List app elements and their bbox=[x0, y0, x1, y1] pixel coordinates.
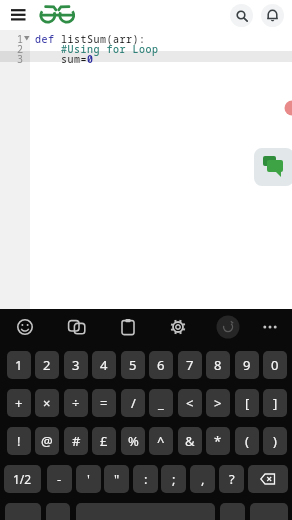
button[interactable]: * bbox=[206, 427, 230, 455]
button[interactable]: 3 bbox=[64, 351, 88, 379]
staticText: 0 bbox=[271, 356, 279, 374]
button[interactable]: 8 bbox=[206, 351, 230, 379]
button[interactable]: ' bbox=[76, 465, 101, 493]
button[interactable]: 9 bbox=[235, 351, 259, 379]
staticText: #Using for Loop bbox=[35, 42, 159, 56]
button[interactable]: # bbox=[64, 427, 88, 455]
button[interactable] bbox=[8, 310, 42, 344]
button[interactable]: @ bbox=[35, 427, 59, 455]
button[interactable]: 0 bbox=[263, 351, 287, 379]
staticText: def listSum(arr): bbox=[35, 32, 146, 46]
staticText: × bbox=[43, 394, 51, 412]
staticText: [ bbox=[245, 394, 250, 412]
button[interactable]: ) bbox=[263, 427, 287, 455]
button[interactable]: 1/2 bbox=[4, 465, 41, 493]
staticText: @ bbox=[41, 432, 53, 450]
staticText: , bbox=[201, 470, 205, 488]
button[interactable]: ] bbox=[263, 389, 287, 417]
staticText: 2 bbox=[43, 356, 51, 374]
button[interactable] bbox=[60, 310, 94, 344]
button[interactable] bbox=[253, 310, 287, 344]
button[interactable] bbox=[230, 4, 253, 27]
button[interactable]: > bbox=[206, 389, 230, 417]
staticText: < bbox=[186, 394, 194, 412]
staticText: 8 bbox=[214, 356, 222, 374]
button[interactable]: / bbox=[121, 389, 145, 417]
button[interactable]: ; bbox=[161, 465, 186, 493]
staticText: ? bbox=[229, 470, 235, 488]
staticText: £ bbox=[100, 432, 108, 450]
button[interactable]: ÷ bbox=[64, 389, 88, 417]
button[interactable]: = bbox=[92, 389, 116, 417]
button[interactable]: " bbox=[104, 465, 129, 493]
button[interactable]: , bbox=[190, 465, 215, 493]
button[interactable] bbox=[111, 310, 145, 344]
staticText: ! bbox=[17, 432, 21, 450]
staticText: / bbox=[131, 394, 136, 412]
staticText: " bbox=[114, 470, 120, 488]
staticText: * bbox=[214, 432, 222, 450]
button[interactable]: ? bbox=[219, 465, 244, 493]
button[interactable]: + bbox=[7, 389, 31, 417]
staticText: ) bbox=[273, 432, 277, 450]
button[interactable]: £ bbox=[92, 427, 116, 455]
staticText: 1/2 bbox=[13, 471, 32, 487]
staticText: 2 bbox=[8, 42, 23, 54]
button[interactable] bbox=[46, 503, 70, 520]
button[interactable]: [ bbox=[235, 389, 259, 417]
button[interactable]: 5 bbox=[121, 351, 145, 379]
button[interactable]: _ bbox=[149, 389, 173, 417]
staticText: 7 bbox=[186, 356, 194, 374]
button[interactable]: 6 bbox=[149, 351, 173, 379]
button[interactable]: : bbox=[133, 465, 158, 493]
button[interactable] bbox=[250, 503, 288, 520]
button[interactable] bbox=[6, 4, 30, 26]
button[interactable]: 1 bbox=[7, 351, 31, 379]
button[interactable]: ^ bbox=[149, 427, 173, 455]
button[interactable] bbox=[5, 503, 41, 520]
button[interactable]: × bbox=[35, 389, 59, 417]
staticText: 5 bbox=[129, 356, 137, 374]
staticText: = bbox=[100, 394, 108, 412]
button[interactable]: 7 bbox=[178, 351, 202, 379]
button[interactable]: ( bbox=[235, 427, 259, 455]
staticText: ' bbox=[87, 470, 90, 488]
button[interactable]: 2 bbox=[35, 351, 59, 379]
staticText: - bbox=[57, 470, 62, 488]
staticText: ; bbox=[172, 470, 176, 488]
button[interactable]: 4 bbox=[92, 351, 116, 379]
staticText: _ bbox=[158, 394, 164, 412]
staticText: 1 bbox=[8, 32, 23, 44]
button[interactable]: % bbox=[121, 427, 145, 455]
staticText: ^ bbox=[157, 432, 165, 450]
staticText: % bbox=[128, 432, 139, 450]
staticText: ÷ bbox=[72, 394, 80, 412]
button[interactable]: & bbox=[178, 427, 202, 455]
button[interactable]: < bbox=[178, 389, 202, 417]
staticText: ( bbox=[245, 432, 249, 450]
staticText: # bbox=[72, 432, 81, 450]
staticText: + bbox=[15, 394, 23, 412]
staticText: > bbox=[214, 394, 222, 412]
staticText: sum=0 bbox=[35, 52, 94, 66]
button[interactable] bbox=[161, 310, 195, 344]
staticText: 3 bbox=[8, 52, 23, 64]
button[interactable] bbox=[261, 4, 284, 27]
button[interactable] bbox=[211, 310, 245, 344]
button[interactable]: ! bbox=[7, 427, 31, 455]
button[interactable] bbox=[220, 503, 245, 520]
staticText: 9 bbox=[243, 356, 251, 374]
button[interactable] bbox=[254, 148, 292, 186]
staticText: 6 bbox=[157, 356, 165, 374]
button[interactable] bbox=[248, 465, 288, 493]
button[interactable]: - bbox=[47, 465, 72, 493]
staticText: ] bbox=[273, 394, 278, 412]
staticText: 1 bbox=[15, 356, 23, 374]
staticText: & bbox=[185, 432, 195, 450]
staticText: : bbox=[144, 470, 148, 488]
staticText: 3 bbox=[72, 356, 80, 374]
staticText: 4 bbox=[100, 356, 108, 374]
